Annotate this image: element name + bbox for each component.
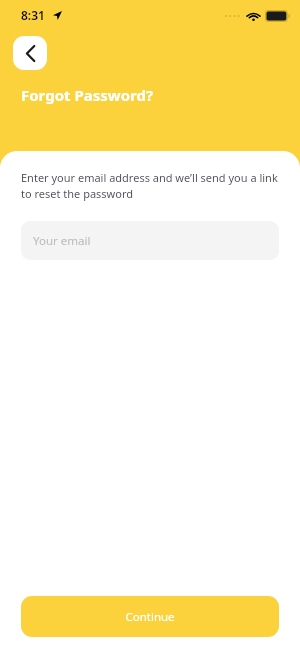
staticText: Enter your email address and we’ll send … xyxy=(21,170,279,201)
staticText: Your email xyxy=(33,233,91,249)
staticText: Continue xyxy=(125,609,175,625)
staticText: 8:31 xyxy=(21,7,45,23)
button[interactable]: Back xyxy=(13,36,47,70)
staticText: Forgot Password? xyxy=(21,85,154,105)
button[interactable]: Continue xyxy=(21,596,279,637)
button[interactable]: Your email xyxy=(21,221,279,260)
